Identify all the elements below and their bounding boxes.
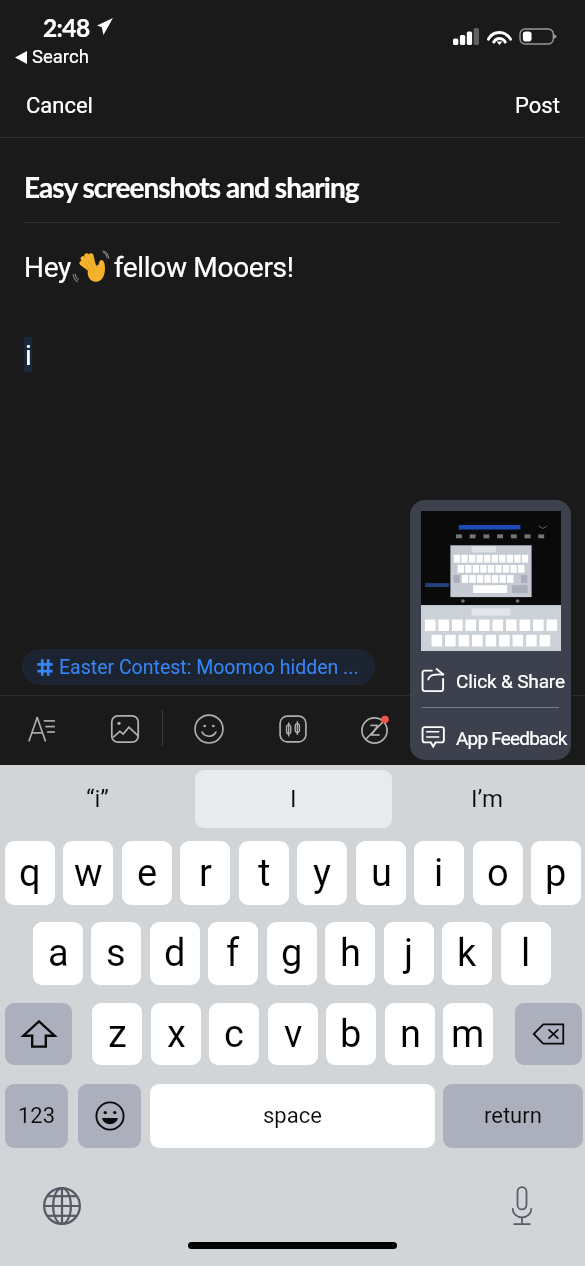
staticText: Click & Share (456, 670, 565, 692)
button[interactable]: s (91, 922, 141, 985)
staticText: p (545, 851, 567, 896)
button[interactable]: Stock (264, 700, 322, 762)
staticText: z (108, 1012, 127, 1057)
button[interactable]: 123 (5, 1084, 68, 1148)
button[interactable]: App Feedback (410, 716, 571, 760)
staticText: k (457, 931, 477, 976)
button[interactable]: y (297, 841, 347, 905)
button[interactable]: i (414, 841, 464, 905)
button[interactable]: Image (96, 700, 154, 762)
button[interactable]: Dictation (497, 1181, 547, 1231)
button[interactable]: q (5, 841, 55, 905)
staticText: I’m (471, 785, 504, 813)
button[interactable]: l (501, 922, 551, 985)
staticText: q (19, 851, 41, 896)
staticText: fellow Mooers! (107, 251, 294, 284)
button[interactable]: m (443, 1003, 493, 1065)
button[interactable]: w (63, 841, 113, 905)
button[interactable]: p (531, 841, 581, 905)
button[interactable]: o (473, 841, 523, 905)
staticText: 2:48 (43, 13, 90, 42)
staticText: c (224, 1012, 244, 1057)
button[interactable]: j (384, 922, 434, 985)
button[interactable]: g (267, 922, 317, 985)
button[interactable]: Screenshot preview (421, 511, 561, 651)
staticText: Easter Contest: Moomoo hidden ... (59, 656, 359, 679)
button[interactable]: h (325, 922, 375, 985)
staticText: Hey (24, 251, 78, 284)
staticText: 123 (18, 1103, 56, 1129)
button[interactable]: I’m (445, 770, 530, 828)
staticText: n (400, 1012, 421, 1057)
staticText: a (48, 931, 69, 976)
staticText: g (281, 931, 303, 976)
staticText: Search (32, 46, 89, 68)
button[interactable]: t (239, 841, 289, 905)
staticText: w (74, 851, 103, 896)
button[interactable]: Change keyboard (37, 1181, 87, 1231)
button[interactable]: z (92, 1003, 142, 1065)
staticText: Post (515, 93, 560, 119)
button[interactable]: n (385, 1003, 435, 1065)
staticText: t (258, 851, 271, 896)
button[interactable]: Post (497, 81, 585, 131)
button[interactable]: b (326, 1003, 376, 1065)
staticText: l (521, 931, 531, 976)
button[interactable]: Cancel (0, 81, 111, 131)
staticText: h (340, 931, 361, 976)
button[interactable]: Easter Contest: Moomoo hidden ... (22, 649, 375, 685)
button[interactable]: Shift (5, 1003, 72, 1065)
button[interactable]: x (151, 1003, 201, 1065)
button[interactable]: “i” (55, 770, 140, 828)
button[interactable]: k (442, 922, 492, 985)
staticText: o (487, 851, 509, 896)
staticText: u (371, 851, 392, 896)
staticText: j (404, 931, 414, 976)
button[interactable]: r (180, 841, 230, 905)
staticText: I (290, 785, 297, 813)
staticText: v (284, 1012, 303, 1057)
staticText: App Feedback (456, 727, 567, 749)
button[interactable]: a (33, 922, 83, 985)
staticText: return (484, 1103, 542, 1129)
button[interactable]: More (347, 700, 405, 762)
staticText: space (263, 1103, 322, 1129)
staticText: x (167, 1012, 186, 1057)
button[interactable]: I (195, 770, 392, 828)
button[interactable]: space (150, 1084, 435, 1148)
button[interactable]: Text format (13, 700, 71, 762)
staticText: m (451, 1012, 485, 1057)
button[interactable]: f (208, 922, 258, 985)
staticText: i (434, 851, 444, 896)
staticText: e (137, 851, 158, 896)
staticText: i (25, 339, 32, 371)
button[interactable]: e (122, 841, 172, 905)
button[interactable]: c (209, 1003, 259, 1065)
button[interactable]: d (150, 922, 200, 985)
button[interactable]: v (268, 1003, 318, 1065)
button[interactable]: Emoji (180, 700, 238, 762)
button[interactable]: u (356, 841, 406, 905)
staticText: b (340, 1012, 362, 1057)
staticText: f (226, 931, 240, 976)
staticText: r (199, 851, 212, 896)
staticText: s (106, 931, 126, 976)
button[interactable]: Backspace (515, 1003, 582, 1065)
button[interactable]: Click & Share (410, 659, 571, 703)
staticText: d (164, 931, 186, 976)
staticText: Cancel (26, 93, 93, 119)
staticText: Easy screenshots and sharing (24, 170, 359, 204)
button[interactable]: return (443, 1084, 583, 1148)
button[interactable]: Emoji (78, 1084, 141, 1148)
staticText: “i” (86, 785, 109, 813)
staticText: y (313, 851, 331, 896)
